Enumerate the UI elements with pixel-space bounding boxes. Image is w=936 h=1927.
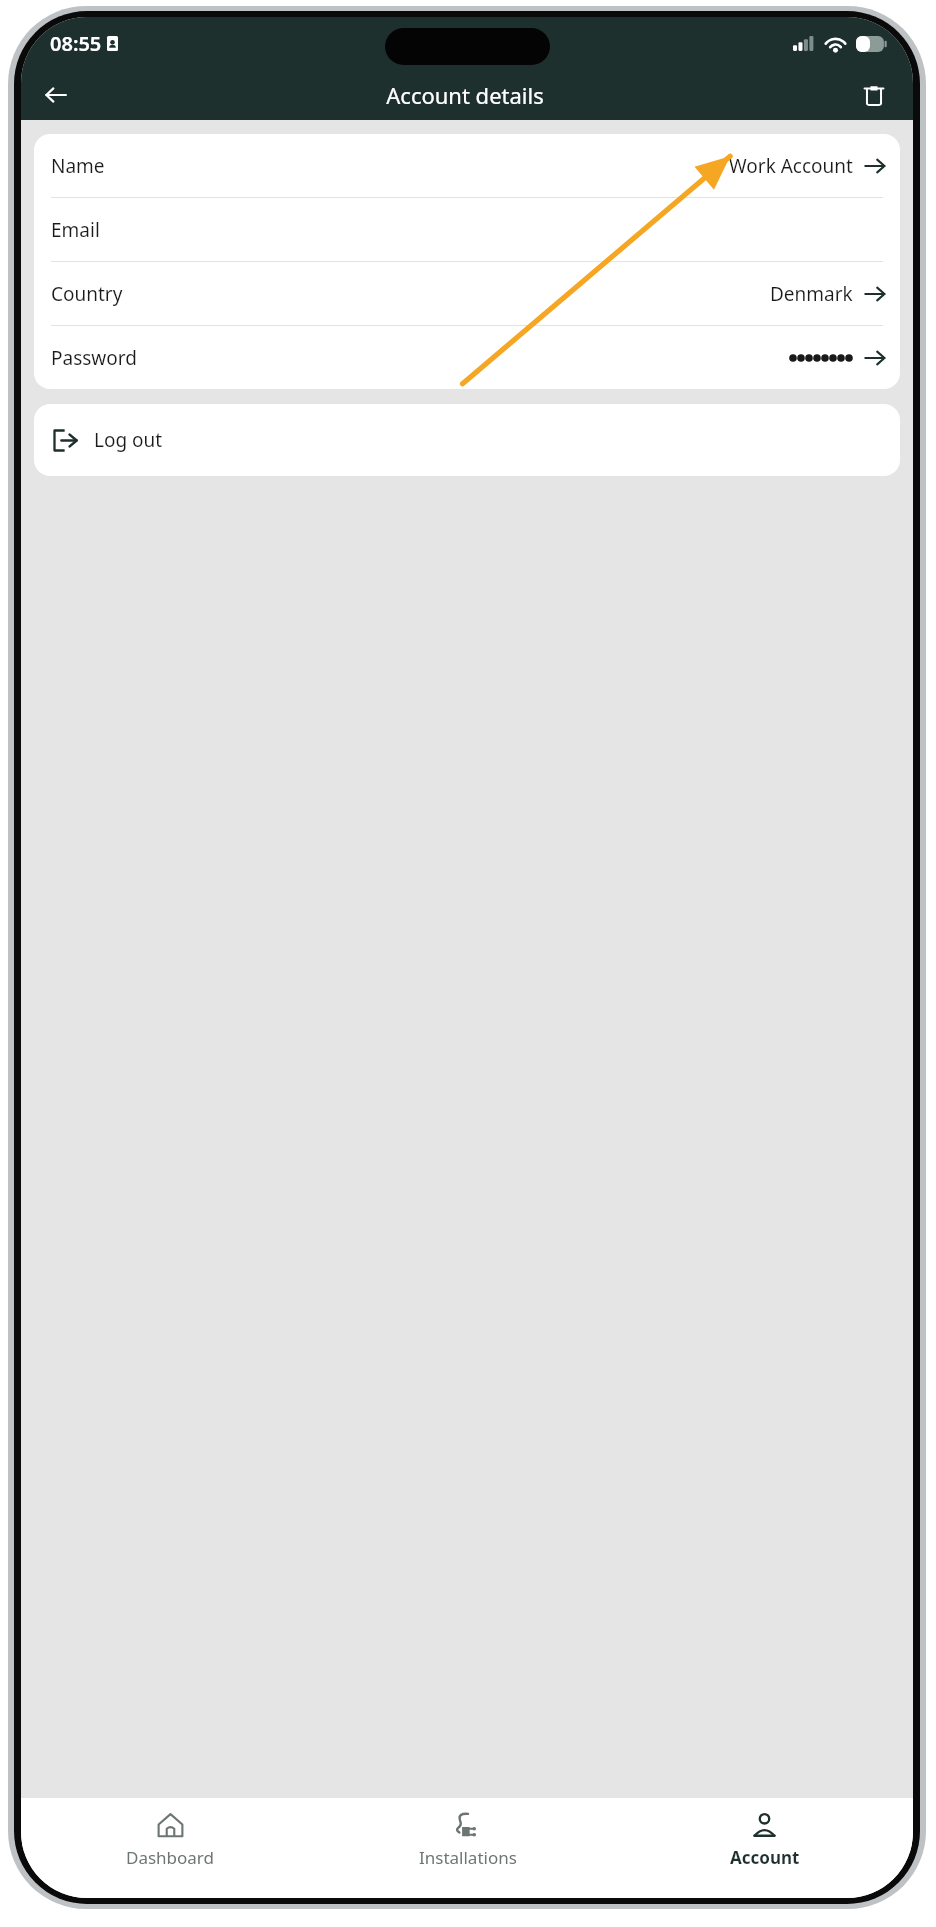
button[interactable]: Dashboard [21,1798,319,1898]
button[interactable]: Back [33,72,79,118]
staticText: Installations [419,1846,517,1869]
staticText: Country [51,281,123,307]
button[interactable]: Name [34,134,900,197]
button[interactable]: Log out [34,404,900,476]
button[interactable]: Installations [319,1798,616,1898]
button[interactable]: Delete account [851,72,897,118]
staticText: Work Account [729,153,853,179]
button[interactable]: Country [34,262,900,325]
staticText: Name [51,153,105,179]
staticText: Email [51,217,100,243]
staticText: Log out [94,427,163,453]
staticText: Dashboard [126,1846,215,1869]
button[interactable]: Account [616,1798,913,1898]
staticText: Password [51,345,137,371]
staticText: Account [730,1846,800,1869]
button[interactable]: Password [34,326,900,389]
staticText: Denmark [770,281,853,307]
staticText: Account details [79,80,851,110]
staticText: 08:55 [50,30,102,57]
